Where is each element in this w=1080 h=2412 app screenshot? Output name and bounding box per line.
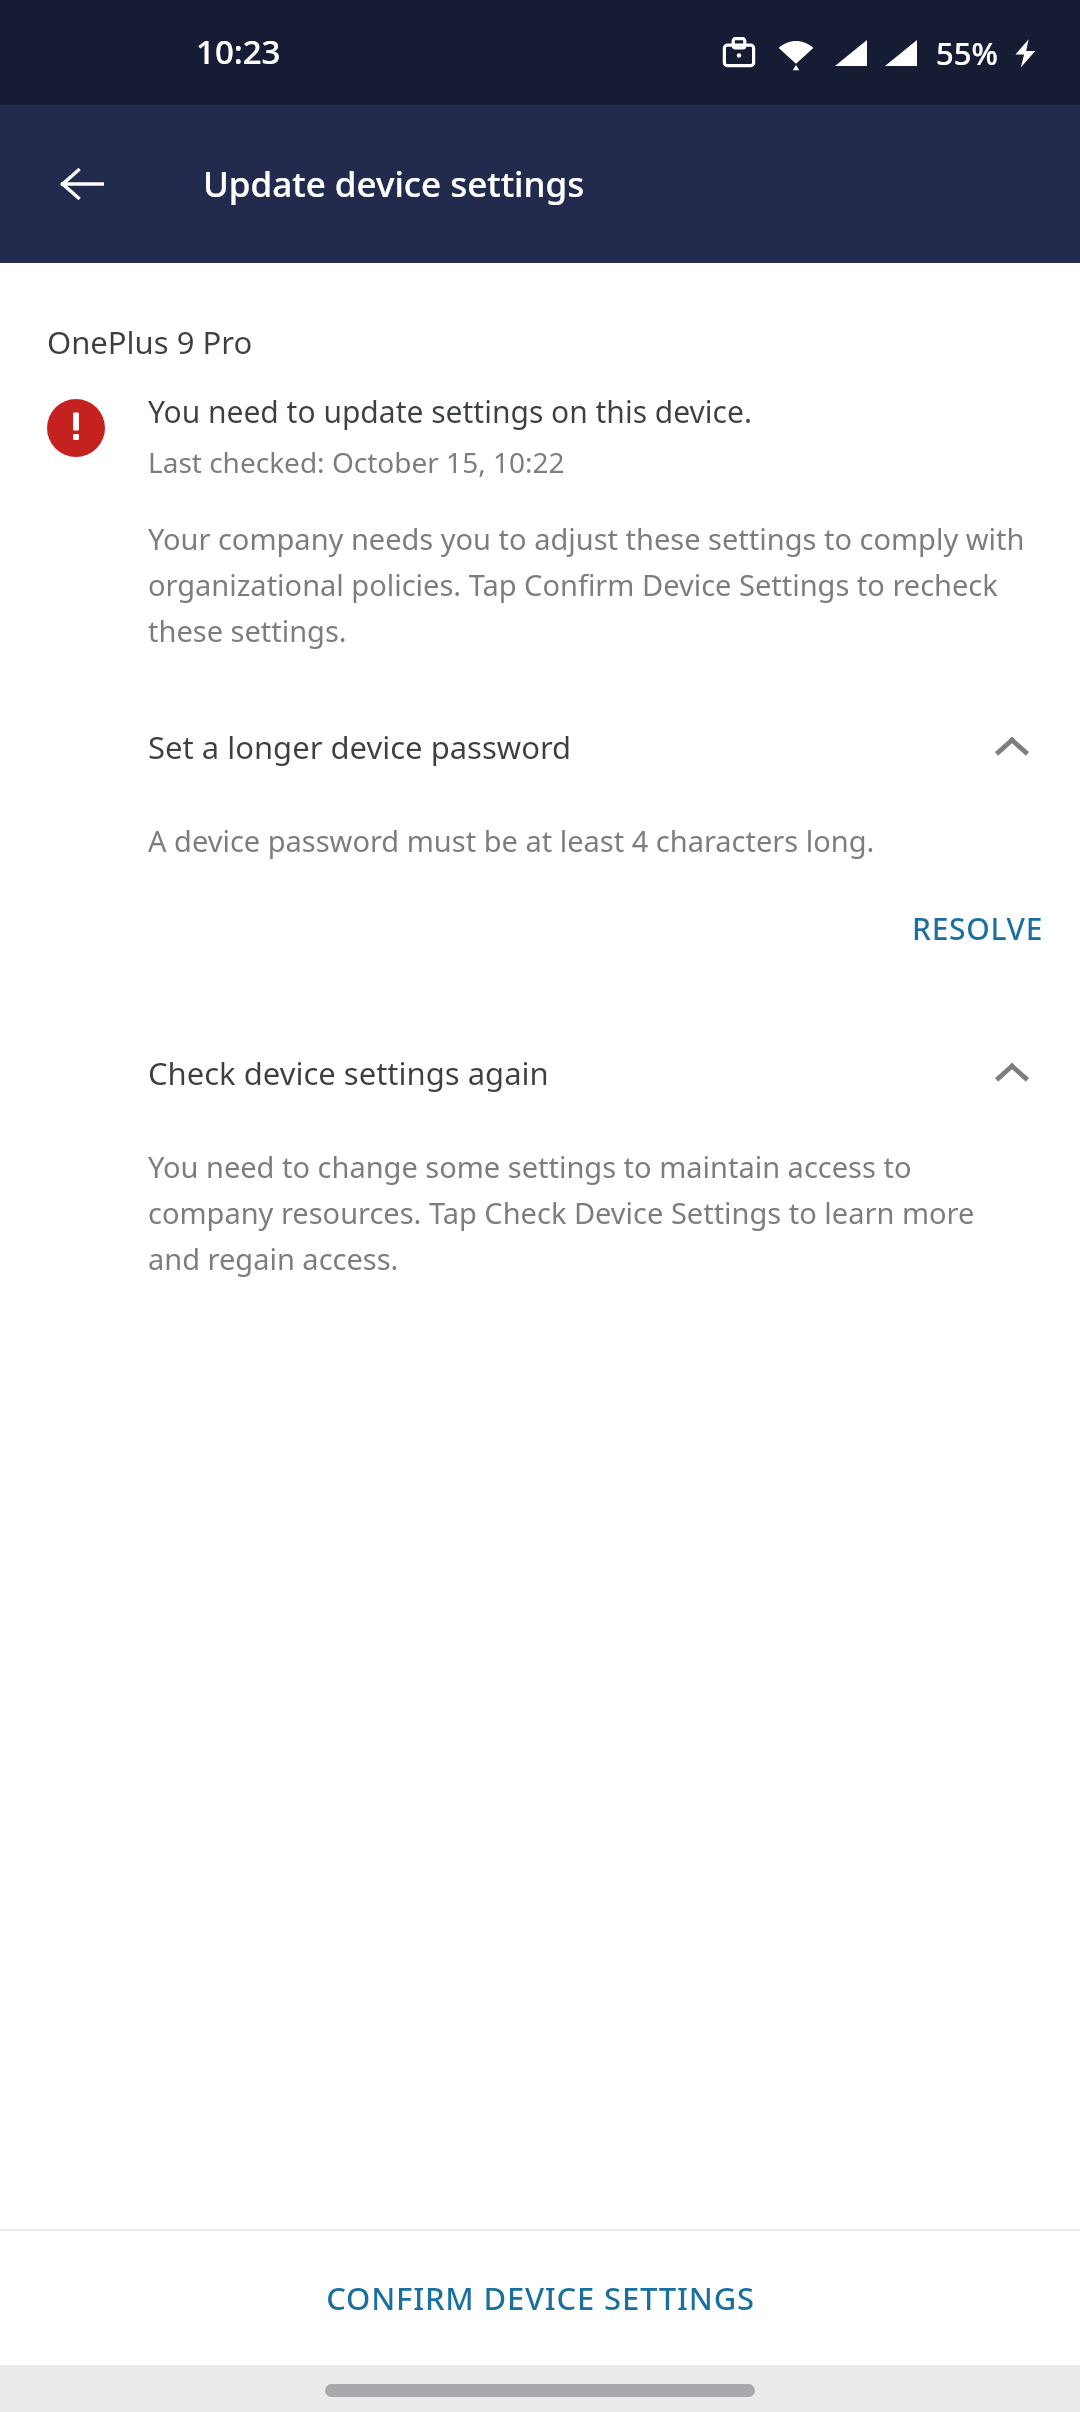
- staticText: OnePlus 9 Pro: [47, 321, 253, 363]
- staticText: Last checked: October 15, 10:22: [148, 443, 565, 481]
- button[interactable]: Set a longer device password: [0, 713, 1080, 781]
- staticText: Update device settings: [203, 160, 585, 208]
- staticText: CONFIRM DEVICE SETTINGS: [326, 2277, 755, 2319]
- button[interactable]: CONFIRM DEVICE SETTINGS: [0, 2231, 1080, 2365]
- staticText: 10:23: [196, 29, 281, 74]
- staticText: A device password must be at least 4 cha…: [148, 821, 875, 860]
- staticText: 55%: [936, 32, 998, 74]
- staticText: Your company needs you to adjust these s…: [148, 519, 1028, 651]
- button[interactable]: Check device settings again: [0, 1039, 1080, 1107]
- staticText: You need to update settings on this devi…: [148, 391, 752, 432]
- staticText: Check device settings again: [148, 1052, 984, 1094]
- button[interactable]: Back: [46, 148, 118, 220]
- button[interactable]: RESOLVE: [876, 892, 1080, 965]
- staticText: RESOLVE: [912, 908, 1044, 949]
- staticText: Set a longer device password: [148, 726, 984, 768]
- staticText: You need to change some settings to main…: [148, 1147, 1028, 1279]
